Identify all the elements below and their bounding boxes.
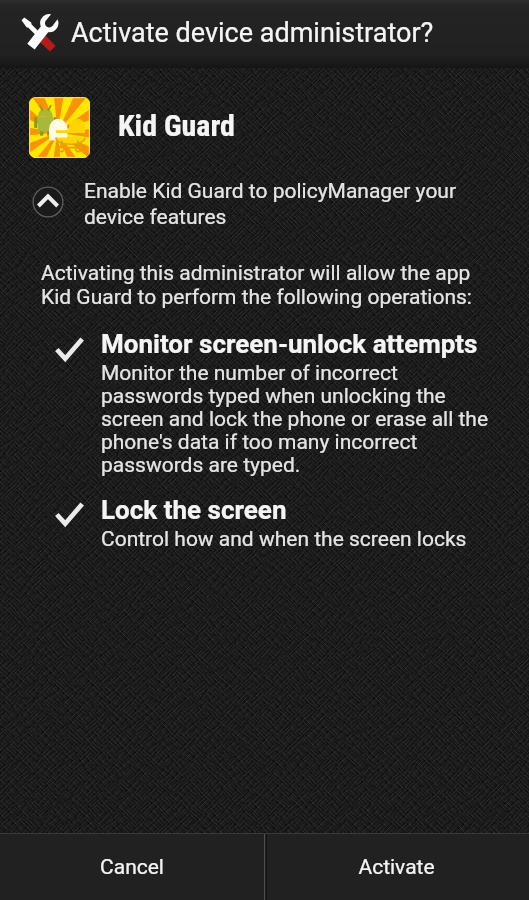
staticText: Activating this administrator will allow…: [41, 261, 473, 309]
staticText: Lock the screen: [101, 495, 287, 525]
staticText: Monitor screen-unlock attempts: [101, 329, 478, 359]
button[interactable]: Activate: [264, 834, 529, 900]
staticText: Monitor the number of incorrect password…: [101, 361, 495, 477]
staticText: Cancel: [100, 855, 164, 880]
staticText: Activate: [358, 855, 435, 880]
staticText: Control how and when the screen locks: [101, 527, 495, 552]
button[interactable]: Cancel: [0, 834, 264, 900]
staticText: Activate device administrator?: [71, 17, 434, 49]
other: Device administrator: [14, 10, 62, 58]
staticText: Enable Kid Guard to policyManager your d…: [84, 179, 466, 229]
staticText: Kid Guard: [118, 108, 235, 143]
